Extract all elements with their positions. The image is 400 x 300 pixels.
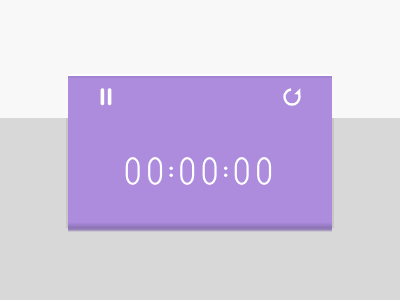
button[interactable]	[92, 83, 120, 111]
button[interactable]	[278, 83, 306, 111]
